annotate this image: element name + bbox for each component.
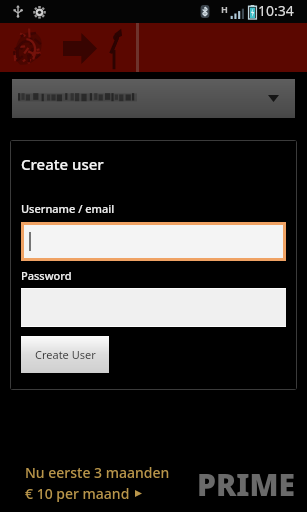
staticText: € 10 per maand [25, 484, 130, 503]
button[interactable]: Nu eerste 3 maanden [0, 462, 307, 512]
staticText: PRIME [197, 464, 295, 505]
staticText: Create user [21, 154, 104, 174]
button[interactable]: Create User [21, 336, 109, 373]
staticText: Nu eerste 3 maanden [25, 463, 170, 482]
other: Open dropdown [268, 95, 279, 102]
button[interactable]: Open dropdown [12, 79, 295, 118]
button[interactable] [24, 225, 283, 258]
staticText: 10:34 [258, 1, 294, 20]
staticText: Create User [35, 347, 96, 362]
staticText: Password [21, 268, 72, 283]
staticText: H [221, 3, 228, 15]
staticText: Username / email [21, 201, 115, 216]
